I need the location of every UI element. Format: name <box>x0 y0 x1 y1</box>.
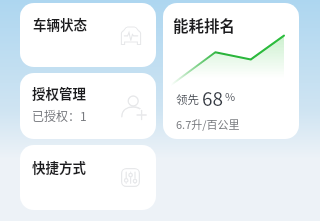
button[interactable]: 能耗排名 <box>163 3 299 139</box>
button[interactable]: 快捷方式 <box>20 145 156 210</box>
staticText: 快捷方式 <box>32 157 86 177</box>
staticText: 能耗排名 <box>173 14 236 36</box>
staticText: 68 <box>202 84 224 112</box>
staticText: 授权管理 <box>32 83 86 103</box>
button[interactable]: 授权管理 <box>20 73 156 139</box>
staticText: 车辆状态 <box>33 14 87 34</box>
staticText: % <box>225 88 236 104</box>
staticText: 6.7升/百公里 <box>176 116 240 132</box>
button[interactable]: 车辆状态 <box>20 3 156 67</box>
staticText: 领先 <box>176 91 199 108</box>
staticText: 已授权：1 <box>32 107 87 124</box>
